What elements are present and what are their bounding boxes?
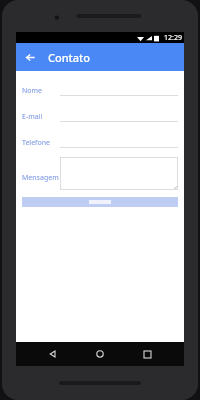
- staticText: Contato: [48, 50, 91, 65]
- staticText: Telefone: [22, 138, 60, 148]
- staticText: Mensagem: [22, 173, 60, 183]
- staticText: E-mail: [22, 112, 60, 122]
- button[interactable]: E-mail: [22, 111, 178, 122]
- button[interactable]: Back: [20, 47, 40, 67]
- button[interactable]: Nome: [22, 85, 178, 96]
- staticText: 12:29: [164, 33, 182, 43]
- button[interactable]: Back: [43, 344, 63, 364]
- button[interactable]: Telefone: [22, 137, 178, 148]
- button[interactable]: Recents: [137, 344, 157, 364]
- staticText: Nome: [22, 86, 60, 96]
- button[interactable]: Mensagem: [22, 157, 178, 190]
- button[interactable]: [22, 197, 178, 207]
- button[interactable]: Home: [90, 344, 110, 364]
